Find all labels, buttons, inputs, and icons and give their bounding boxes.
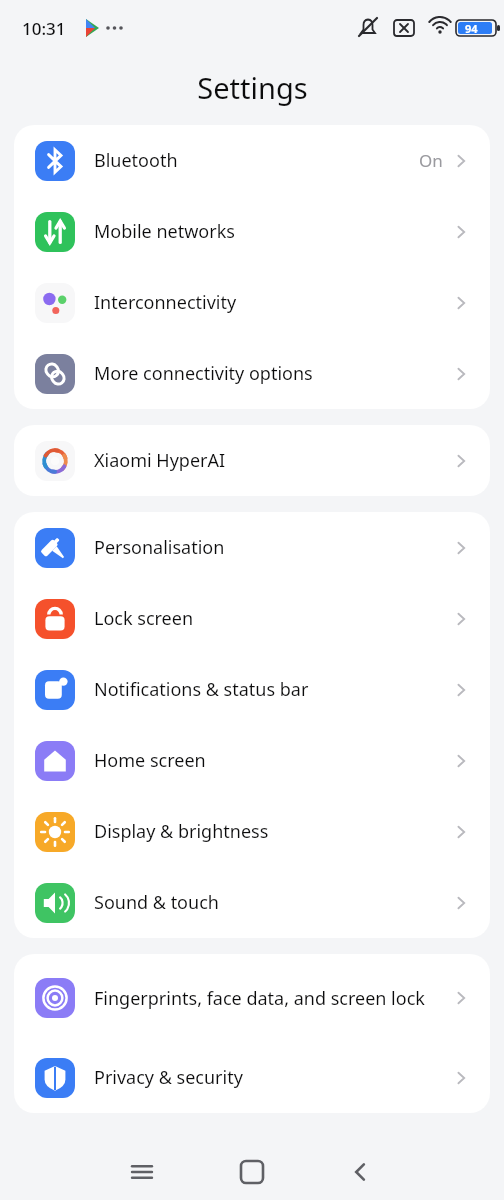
button[interactable]: Interconnectivity — [14, 267, 490, 338]
button[interactable]: Home — [228, 1148, 276, 1196]
staticText: 94 — [465, 21, 478, 36]
staticText: Notifications & status bar — [94, 677, 453, 702]
button[interactable]: Sound & touch — [14, 867, 490, 938]
staticText: 10:31 — [22, 17, 66, 40]
button[interactable]: Bluetooth — [14, 125, 490, 196]
button[interactable]: Lock screen — [14, 583, 490, 654]
button[interactable]: Notifications & status bar — [14, 654, 490, 725]
staticText: Personalisation — [94, 535, 453, 560]
staticText: Bluetooth — [94, 148, 419, 173]
button[interactable]: Personalisation — [14, 512, 490, 583]
staticText: Fingerprints, face data, and screen lock — [94, 986, 453, 1011]
staticText: More connectivity options — [94, 361, 453, 386]
staticText: Interconnectivity — [94, 290, 453, 315]
staticText: Home screen — [94, 748, 453, 773]
button[interactable]: Back — [337, 1148, 385, 1196]
staticText: Sound & touch — [94, 890, 453, 915]
button[interactable]: Home screen — [14, 725, 490, 796]
staticText: Lock screen — [94, 606, 453, 631]
staticText: Mobile networks — [94, 219, 453, 244]
button[interactable]: Mobile networks — [14, 196, 490, 267]
button[interactable]: Privacy & security — [14, 1042, 490, 1113]
staticText: Settings — [197, 68, 308, 107]
button[interactable]: Fingerprints, face data, and screen lock — [14, 954, 490, 1042]
button[interactable]: Xiaomi HyperAI — [14, 425, 490, 496]
button[interactable]: Display & brightness — [14, 796, 490, 867]
staticText: Xiaomi HyperAI — [94, 448, 453, 473]
button[interactable]: More connectivity options — [14, 338, 490, 409]
staticText: Privacy & security — [94, 1065, 453, 1090]
staticText: Display & brightness — [94, 819, 453, 844]
staticText: On — [419, 149, 443, 172]
button[interactable]: Recents — [118, 1148, 166, 1196]
